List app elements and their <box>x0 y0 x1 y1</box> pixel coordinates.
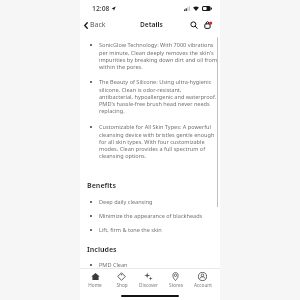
staticText: Deep daily cleansing <box>99 198 153 206</box>
button[interactable]: Stores <box>162 271 189 289</box>
button[interactable]: Account <box>189 271 216 289</box>
staticText: Discover <box>139 282 158 288</box>
button[interactable]: Home <box>82 271 108 289</box>
staticText: Customizable for All Skin Types: A power… <box>99 123 215 159</box>
button[interactable]: Shopping bag <box>202 19 214 31</box>
staticText: SonicGlow Technology: With 7000 vibratio… <box>99 41 218 70</box>
staticText: Minimize the appearance of blackheads <box>99 212 203 220</box>
staticText: PMD Clean <box>99 261 128 268</box>
staticText: 12:08 <box>92 4 110 13</box>
staticText: Lift, firm & tone the skin <box>99 226 162 234</box>
button[interactable]: Shop <box>108 271 135 289</box>
button[interactable]: Discover <box>135 271 162 289</box>
staticText: Back <box>90 20 106 30</box>
staticText: The Beauty of Silicone: Using ultra-hygi… <box>99 78 217 114</box>
staticText: Account <box>194 282 212 288</box>
staticText: Home <box>88 282 102 288</box>
staticText: Details <box>140 20 163 29</box>
staticText: Shop <box>116 282 128 288</box>
button[interactable]: Back <box>80 18 111 32</box>
staticText: Includes <box>87 245 117 255</box>
staticText: Stores <box>169 282 183 288</box>
staticText: Benefits <box>87 181 116 191</box>
button[interactable]: Search <box>188 19 200 31</box>
